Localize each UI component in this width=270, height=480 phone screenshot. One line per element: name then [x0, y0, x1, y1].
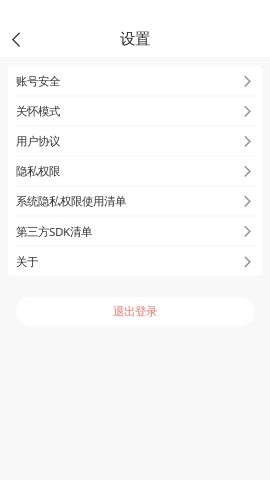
button[interactable]: 关于	[8, 246, 262, 276]
staticText: 关怀模式	[16, 104, 60, 119]
staticText: 用户协议	[16, 134, 60, 149]
staticText: 关于	[16, 255, 38, 269]
button[interactable]: 账号安全	[8, 66, 262, 96]
button[interactable]: 第三方SDK清单	[8, 216, 262, 246]
staticText: 隐私权限	[16, 164, 60, 179]
staticText: 退出登录	[113, 304, 157, 319]
button[interactable]: 隐私权限	[8, 156, 262, 186]
staticText: 第三方SDK清单	[16, 224, 92, 239]
button[interactable]: Back	[0, 0, 40, 57]
button[interactable]: 系统隐私权限使用清单	[8, 186, 262, 216]
button[interactable]: 用户协议	[8, 126, 262, 156]
button[interactable]: 退出登录	[0, 297, 270, 326]
staticText: 设置	[120, 29, 150, 49]
button[interactable]: 关怀模式	[8, 96, 262, 126]
staticText: 账号安全	[16, 74, 60, 89]
staticText: 系统隐私权限使用清单	[16, 194, 126, 209]
